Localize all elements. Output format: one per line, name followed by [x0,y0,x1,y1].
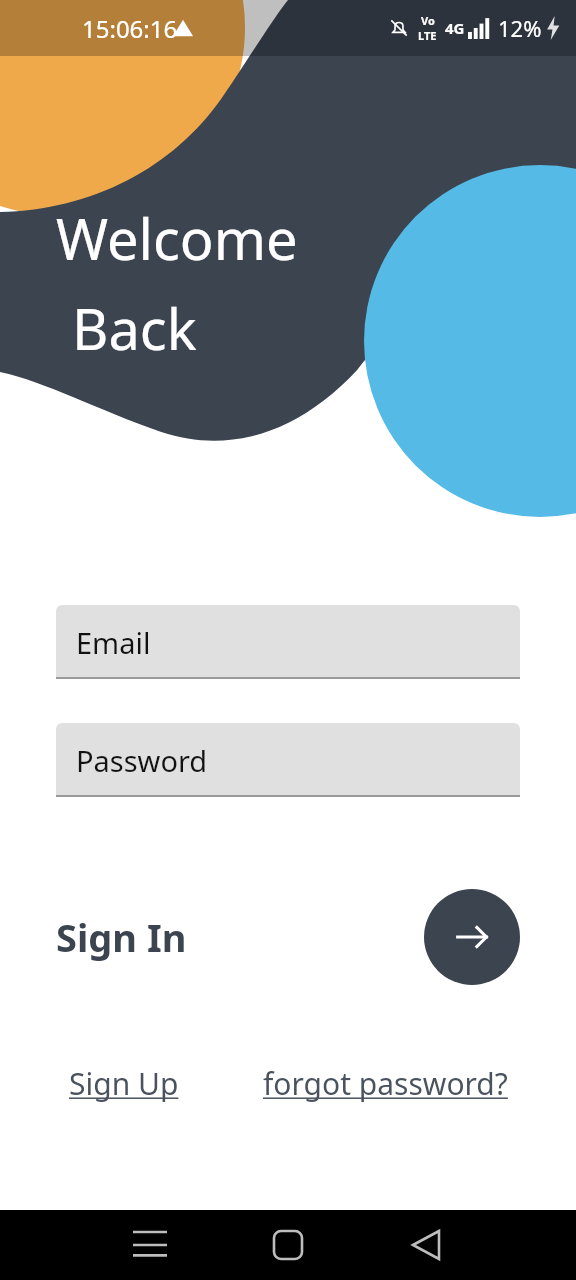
staticText: 4G [445,18,465,38]
button[interactable]: forgot password? [263,1063,508,1104]
staticText: Email [76,623,151,662]
button[interactable]: Sign In [424,889,520,985]
staticText: Vo [421,13,435,28]
staticText: LTE [418,28,437,43]
button[interactable]: Sign In [56,911,187,963]
staticText: 15:06:16 [82,12,178,45]
button[interactable]: Back [380,1210,472,1280]
staticText: 12% [498,13,542,43]
staticText: Password [76,741,208,780]
button[interactable]: Password [56,723,520,797]
staticText: Back [72,290,197,366]
button[interactable]: Recent apps [104,1210,196,1280]
button[interactable]: Email [56,605,520,679]
staticText: Welcome [56,200,298,276]
button[interactable]: Sign Up [69,1063,179,1104]
button[interactable]: Home [242,1210,334,1280]
